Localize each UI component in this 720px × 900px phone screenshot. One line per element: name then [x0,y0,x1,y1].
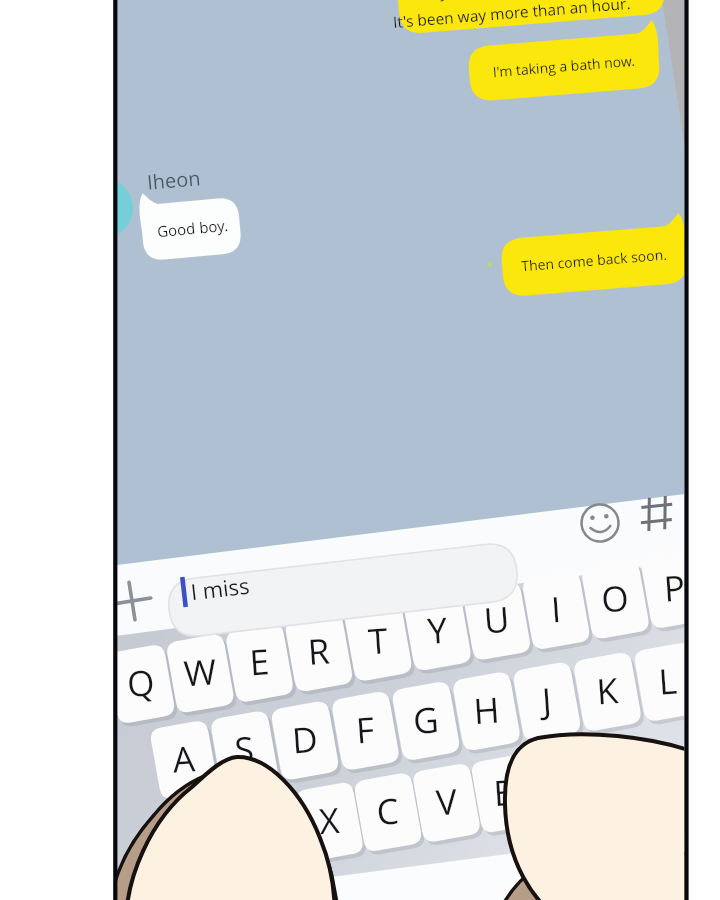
button[interactable]: Key O [586,563,644,635]
button[interactable]: Key A [155,724,213,796]
button[interactable]: Key Q [112,648,170,720]
button[interactable]: Message input, I miss [167,556,517,624]
button[interactable]: Key K [578,655,636,727]
button[interactable]: Hashtag [634,492,678,536]
button[interactable]: Key W [171,637,229,709]
button[interactable]: Key F [336,694,394,766]
button[interactable]: Key B [476,757,534,829]
button[interactable]: Key C [359,776,417,848]
button[interactable]: Key Y [408,595,466,667]
button[interactable]: Emoji [578,501,622,545]
button[interactable]: Message from Iheon: Good boy. [142,202,240,258]
button[interactable]: Key D [276,704,334,776]
button[interactable]: Key U [467,584,525,656]
button[interactable]: Key S [215,714,273,786]
button[interactable]: Key G [397,685,455,757]
button[interactable]: Key T [349,605,407,677]
button[interactable]: Message: I'm taking a bath now. [469,40,659,95]
button[interactable]: Add attachment [110,576,158,624]
button[interactable]: Key E [230,626,288,698]
button[interactable]: Key R [289,616,347,688]
button[interactable]: Key M [593,738,651,810]
button[interactable]: Key V [417,766,475,838]
button[interactable]: Key I [527,574,585,646]
button[interactable]: Key L [639,646,697,718]
button[interactable]: Message: Then come back soon. [502,232,682,290]
button[interactable]: Key Z [242,795,300,867]
button[interactable]: Key P [645,553,703,625]
button[interactable]: Message: It's been way more than an hour… [400,0,670,44]
button[interactable]: Key H [457,675,515,747]
button[interactable]: Key J [518,665,576,737]
button[interactable]: Iheon profile photo [117,182,169,234]
button[interactable]: Key X [300,785,358,857]
